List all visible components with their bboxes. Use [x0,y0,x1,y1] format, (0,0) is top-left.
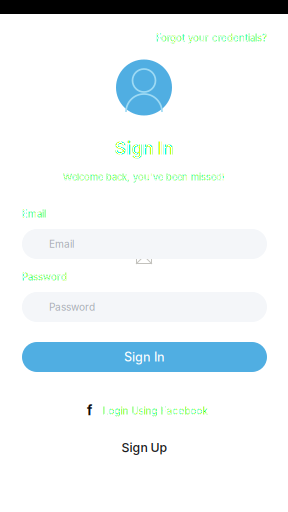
staticText: Welcome back, you've been missed! [63,171,225,183]
staticText: f [87,402,92,418]
button[interactable]: Password [22,292,267,322]
staticText: Email [49,238,74,250]
staticText: Password [49,301,95,313]
button[interactable]: Forgot your credentials? [22,32,267,44]
button[interactable]: Sign Up [22,432,267,463]
staticText: Sign In [114,137,173,159]
button[interactable]: Email [22,229,267,259]
image [136,248,152,264]
staticText: Password [22,271,67,283]
staticText: Sign Up [121,440,167,455]
staticText: Login Using Facebook [102,405,207,417]
button[interactable]: Sign In [22,342,267,372]
staticText: Sign In [124,349,165,365]
staticText: Email [22,208,46,220]
staticText: Forgot your credentials? [156,32,267,44]
button[interactable]: f [22,402,267,420]
